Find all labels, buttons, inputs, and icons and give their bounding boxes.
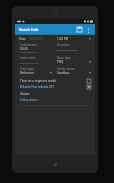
button[interactable]: Billable/Non billable API — [19, 84, 91, 90]
button[interactable]: Batch Edit — [18, 26, 40, 33]
staticText: 00:35 — [20, 47, 28, 51]
button[interactable]: Reference — [19, 71, 52, 75]
staticText: Date — [19, 37, 26, 41]
button[interactable]: Date — [19, 37, 52, 41]
staticText: Batch Edit — [19, 27, 39, 32]
staticText: Billable/Non billable API — [20, 85, 54, 89]
button[interactable]: Sandbox — [56, 71, 91, 75]
staticText: Collaborator — [20, 43, 38, 47]
button[interactable]: Time on a segment credit — [19, 78, 91, 84]
button[interactable]: More options — [84, 26, 92, 34]
staticText: Entity status — [20, 98, 38, 102]
button[interactable]: Save — [75, 25, 84, 34]
staticText: Reference — [20, 71, 35, 75]
staticText: Duration — [57, 43, 70, 47]
staticText: Case type — [20, 67, 34, 71]
staticText: 1:45 PM — [57, 37, 69, 41]
staticText: 12/2/2015 — [29, 37, 44, 41]
button[interactable]: Entity status — [20, 98, 38, 102]
staticText: Time on a segment credit — [20, 79, 56, 83]
button[interactable]: PDQ — [56, 60, 91, 64]
staticText: Sandbox — [57, 71, 70, 75]
staticText: Case notes — [20, 56, 36, 60]
button[interactable]: 1:45 PM — [56, 37, 91, 41]
staticText: Note type — [57, 56, 71, 60]
staticText: PDQ — [57, 60, 64, 64]
staticText: Sector areas — [57, 67, 75, 71]
staticText: Status — [20, 92, 30, 96]
